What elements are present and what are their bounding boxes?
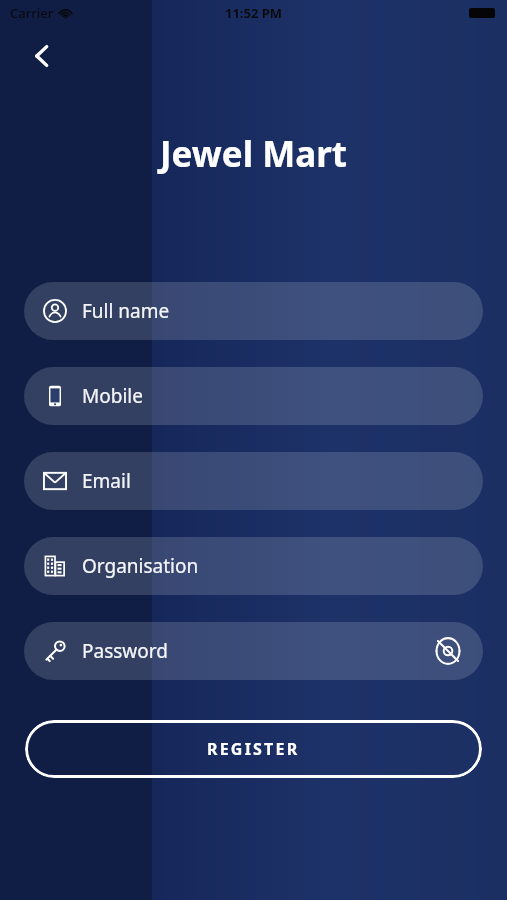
button[interactable]: Password	[24, 622, 483, 680]
staticText: Full name	[82, 298, 170, 324]
button[interactable]: Organisation	[24, 537, 483, 595]
button[interactable]: Back	[16, 30, 68, 82]
staticText: Jewel Mart	[0, 130, 507, 178]
staticText: Email	[82, 468, 131, 494]
staticText: Mobile	[82, 383, 143, 409]
staticText: Organisation	[82, 553, 199, 579]
button[interactable]: REGISTER	[25, 720, 482, 778]
button[interactable]: Show password	[431, 634, 465, 668]
button[interactable]: Email	[24, 452, 483, 510]
staticText: 11:52 PM	[225, 4, 283, 22]
button[interactable]: Full name	[24, 282, 483, 340]
staticText: Carrier	[10, 4, 54, 22]
staticText: Password	[82, 638, 168, 664]
button[interactable]: Mobile	[24, 367, 483, 425]
staticText: REGISTER	[207, 738, 300, 760]
